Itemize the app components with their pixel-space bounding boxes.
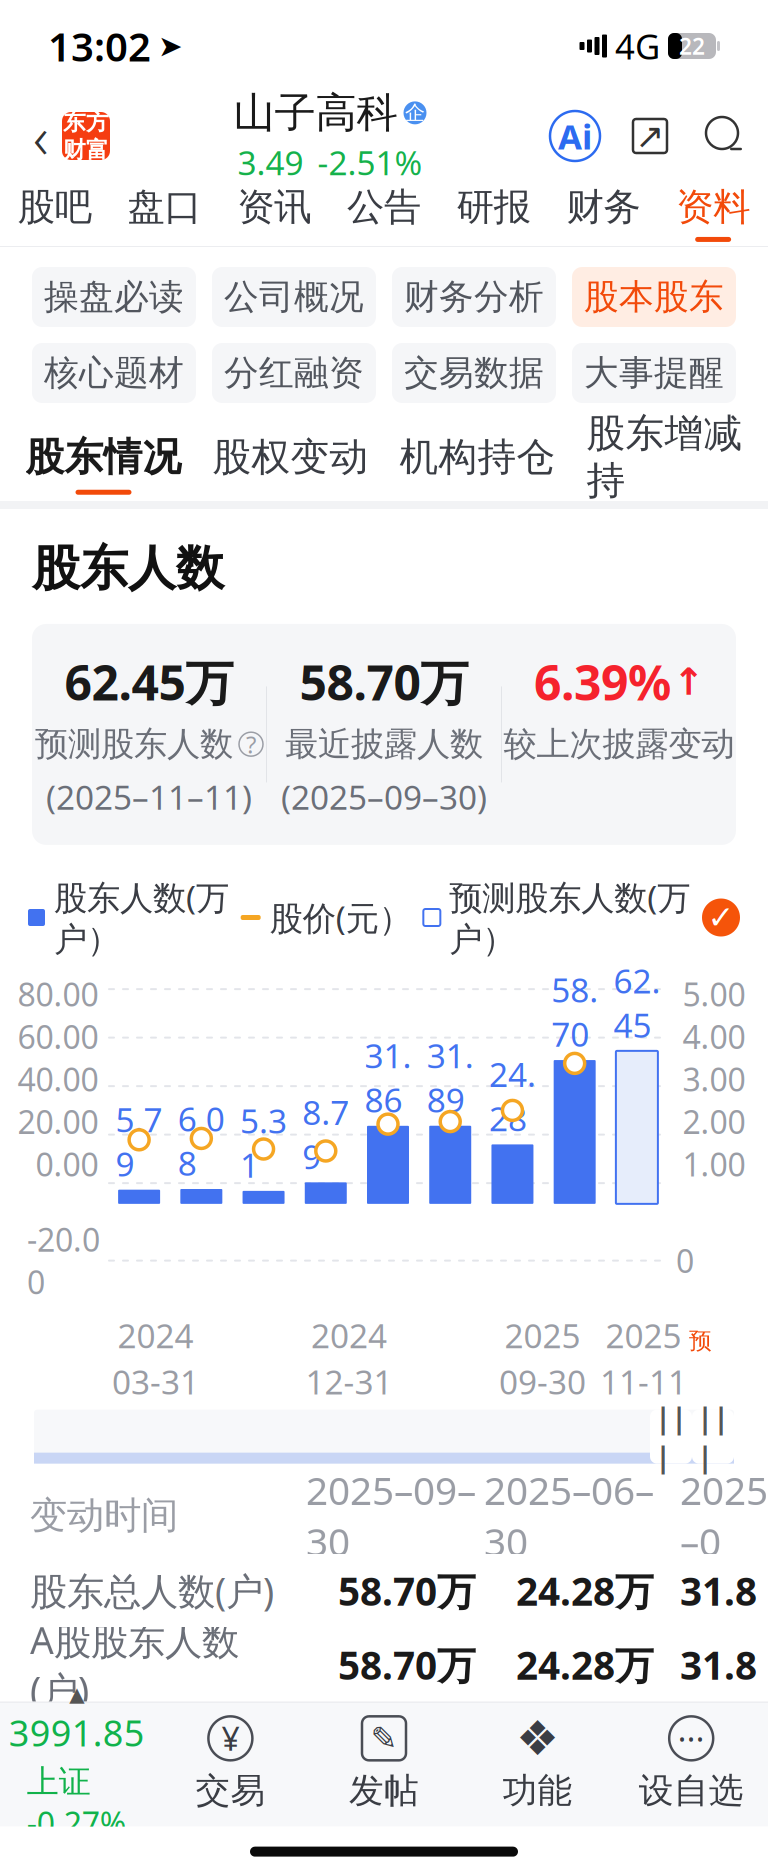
staticText: 操盘必读 <box>44 276 184 318</box>
staticText: 31.86 <box>364 1033 411 1122</box>
staticText: 2025–06–30 <box>484 1464 654 1567</box>
staticText: 核心题材 <box>44 352 184 394</box>
staticText: 24.28 <box>489 1052 536 1140</box>
staticText: 5.31 <box>240 1098 287 1187</box>
button[interactable]: 东方财富首页 <box>62 112 110 160</box>
staticText: (2025–09–30) <box>281 775 487 819</box>
staticText: 变动时间 <box>30 1493 178 1539</box>
button[interactable]: ▲ <box>0 1683 154 1844</box>
button[interactable]: 核心题材 <box>32 343 196 403</box>
button[interactable]: 切换预测 <box>702 898 740 936</box>
button[interactable]: 大事提醒 <box>572 343 736 403</box>
staticText: ➤ <box>158 29 183 63</box>
staticText: 09-30 <box>499 1359 586 1404</box>
staticText: 58.70 <box>551 967 598 1056</box>
button[interactable]: 财务分析 <box>392 267 556 327</box>
staticText: 2024 <box>311 1313 387 1357</box>
button[interactable]: 交易数据 <box>392 343 556 403</box>
staticText: 财富 <box>63 136 109 164</box>
button[interactable]: 盘口 <box>110 180 219 246</box>
staticText: 交易 <box>195 1769 265 1812</box>
button[interactable]: 股吧 <box>0 180 110 246</box>
button[interactable]: ❖ <box>461 1715 614 1812</box>
staticText: 0.00 <box>35 1143 98 1185</box>
button[interactable]: ¥ <box>154 1715 307 1812</box>
staticText: ¥ <box>221 1717 239 1760</box>
button[interactable]: 股本股东 <box>572 267 736 327</box>
staticText: ↑ <box>673 661 704 703</box>
staticText: 较上次披露变动 <box>503 724 734 765</box>
button[interactable]: 股东情况 <box>10 427 197 501</box>
staticText: 24.28万 <box>516 1565 654 1616</box>
staticText: 31.8 <box>680 1639 757 1690</box>
button[interactable]: 右侧范围手柄 <box>692 1410 734 1464</box>
staticText: 预测股东人数 <box>35 724 233 765</box>
staticText: 4G <box>615 23 660 69</box>
staticText: 发帖 <box>349 1769 419 1812</box>
staticText: 58.70万 <box>338 1639 476 1690</box>
button[interactable]: 机构持仓 <box>384 427 571 501</box>
staticText: 资料 <box>676 184 750 230</box>
button[interactable]: AI 助手 <box>550 111 600 161</box>
staticText: 80.00 <box>17 973 98 1015</box>
staticText: 03-31 <box>112 1359 199 1404</box>
button[interactable]: 研报 <box>439 180 549 246</box>
staticText: 资讯 <box>237 184 311 230</box>
staticText: 5.79 <box>116 1097 163 1186</box>
button[interactable]: ··· <box>614 1715 768 1812</box>
staticText: ✓ <box>707 899 734 936</box>
staticText: 股东总人数(户) <box>30 1566 274 1615</box>
staticText: 2025 <box>605 1313 681 1357</box>
button[interactable]: 资料 <box>658 180 768 246</box>
staticText: 财务 <box>566 184 640 230</box>
staticText: 预测股东人数(万户） <box>449 875 690 960</box>
staticText: 0 <box>676 1239 694 1282</box>
staticText: 6.39% <box>534 650 671 714</box>
button[interactable]: 股东增减持 <box>571 427 758 501</box>
button[interactable]: 返回 <box>20 108 62 164</box>
staticText: (2025–11–11) <box>46 775 252 819</box>
staticText: 公司概况 <box>224 276 364 318</box>
staticText: 股权变动 <box>212 433 368 481</box>
staticText: 大事提醒 <box>584 352 724 394</box>
staticText: 1.00 <box>682 1143 745 1185</box>
button[interactable]: 分享 <box>626 112 674 160</box>
staticText: 2024 <box>117 1313 193 1357</box>
staticText: 58.70万 <box>299 650 468 714</box>
staticText: 股东人数(万户） <box>54 875 229 960</box>
staticText: 预 <box>689 1327 712 1355</box>
button[interactable]: ✎ <box>307 1715 461 1812</box>
button[interactable]: 操盘必读 <box>32 267 196 327</box>
staticText: 24.28万 <box>516 1639 654 1690</box>
staticText: 3.49 <box>237 140 303 185</box>
button[interactable]: 股权变动 <box>197 427 384 501</box>
staticText: 财务分析 <box>404 276 544 318</box>
staticText: 22 <box>679 31 705 61</box>
staticText: 20.00 <box>17 1100 98 1143</box>
staticText: 分红融资 <box>224 352 364 394</box>
button[interactable]: 公告 <box>329 180 439 246</box>
staticText: ? <box>246 728 256 760</box>
button[interactable]: 分红融资 <box>212 343 376 403</box>
staticText: 股东增减持 <box>586 409 742 504</box>
staticText: 5.00 <box>682 973 745 1015</box>
staticText: 31.8 <box>680 1565 757 1616</box>
staticText: 2025 <box>504 1313 580 1357</box>
staticText: 60.00 <box>17 1015 98 1058</box>
staticText: ··· <box>678 1717 705 1760</box>
staticText: 机构持仓 <box>399 433 555 481</box>
button[interactable]: 财务 <box>549 180 658 246</box>
staticText: 企 <box>405 101 425 125</box>
staticText: -2.51% <box>317 140 422 185</box>
button[interactable]: 公司概况 <box>212 267 376 327</box>
button[interactable]: 资讯 <box>219 180 329 246</box>
staticText: ❖ <box>516 1711 559 1766</box>
staticText: 2.00 <box>682 1100 745 1143</box>
button[interactable]: 左侧范围手柄 <box>650 1410 692 1464</box>
staticText: A股股东人数(户) <box>30 1615 239 1714</box>
staticText: 最近披露人数 <box>285 724 483 765</box>
staticText: 上证 -0.27% <box>27 1759 127 1844</box>
button[interactable]: 搜索 <box>700 112 748 160</box>
staticText: ↗ <box>635 116 664 156</box>
